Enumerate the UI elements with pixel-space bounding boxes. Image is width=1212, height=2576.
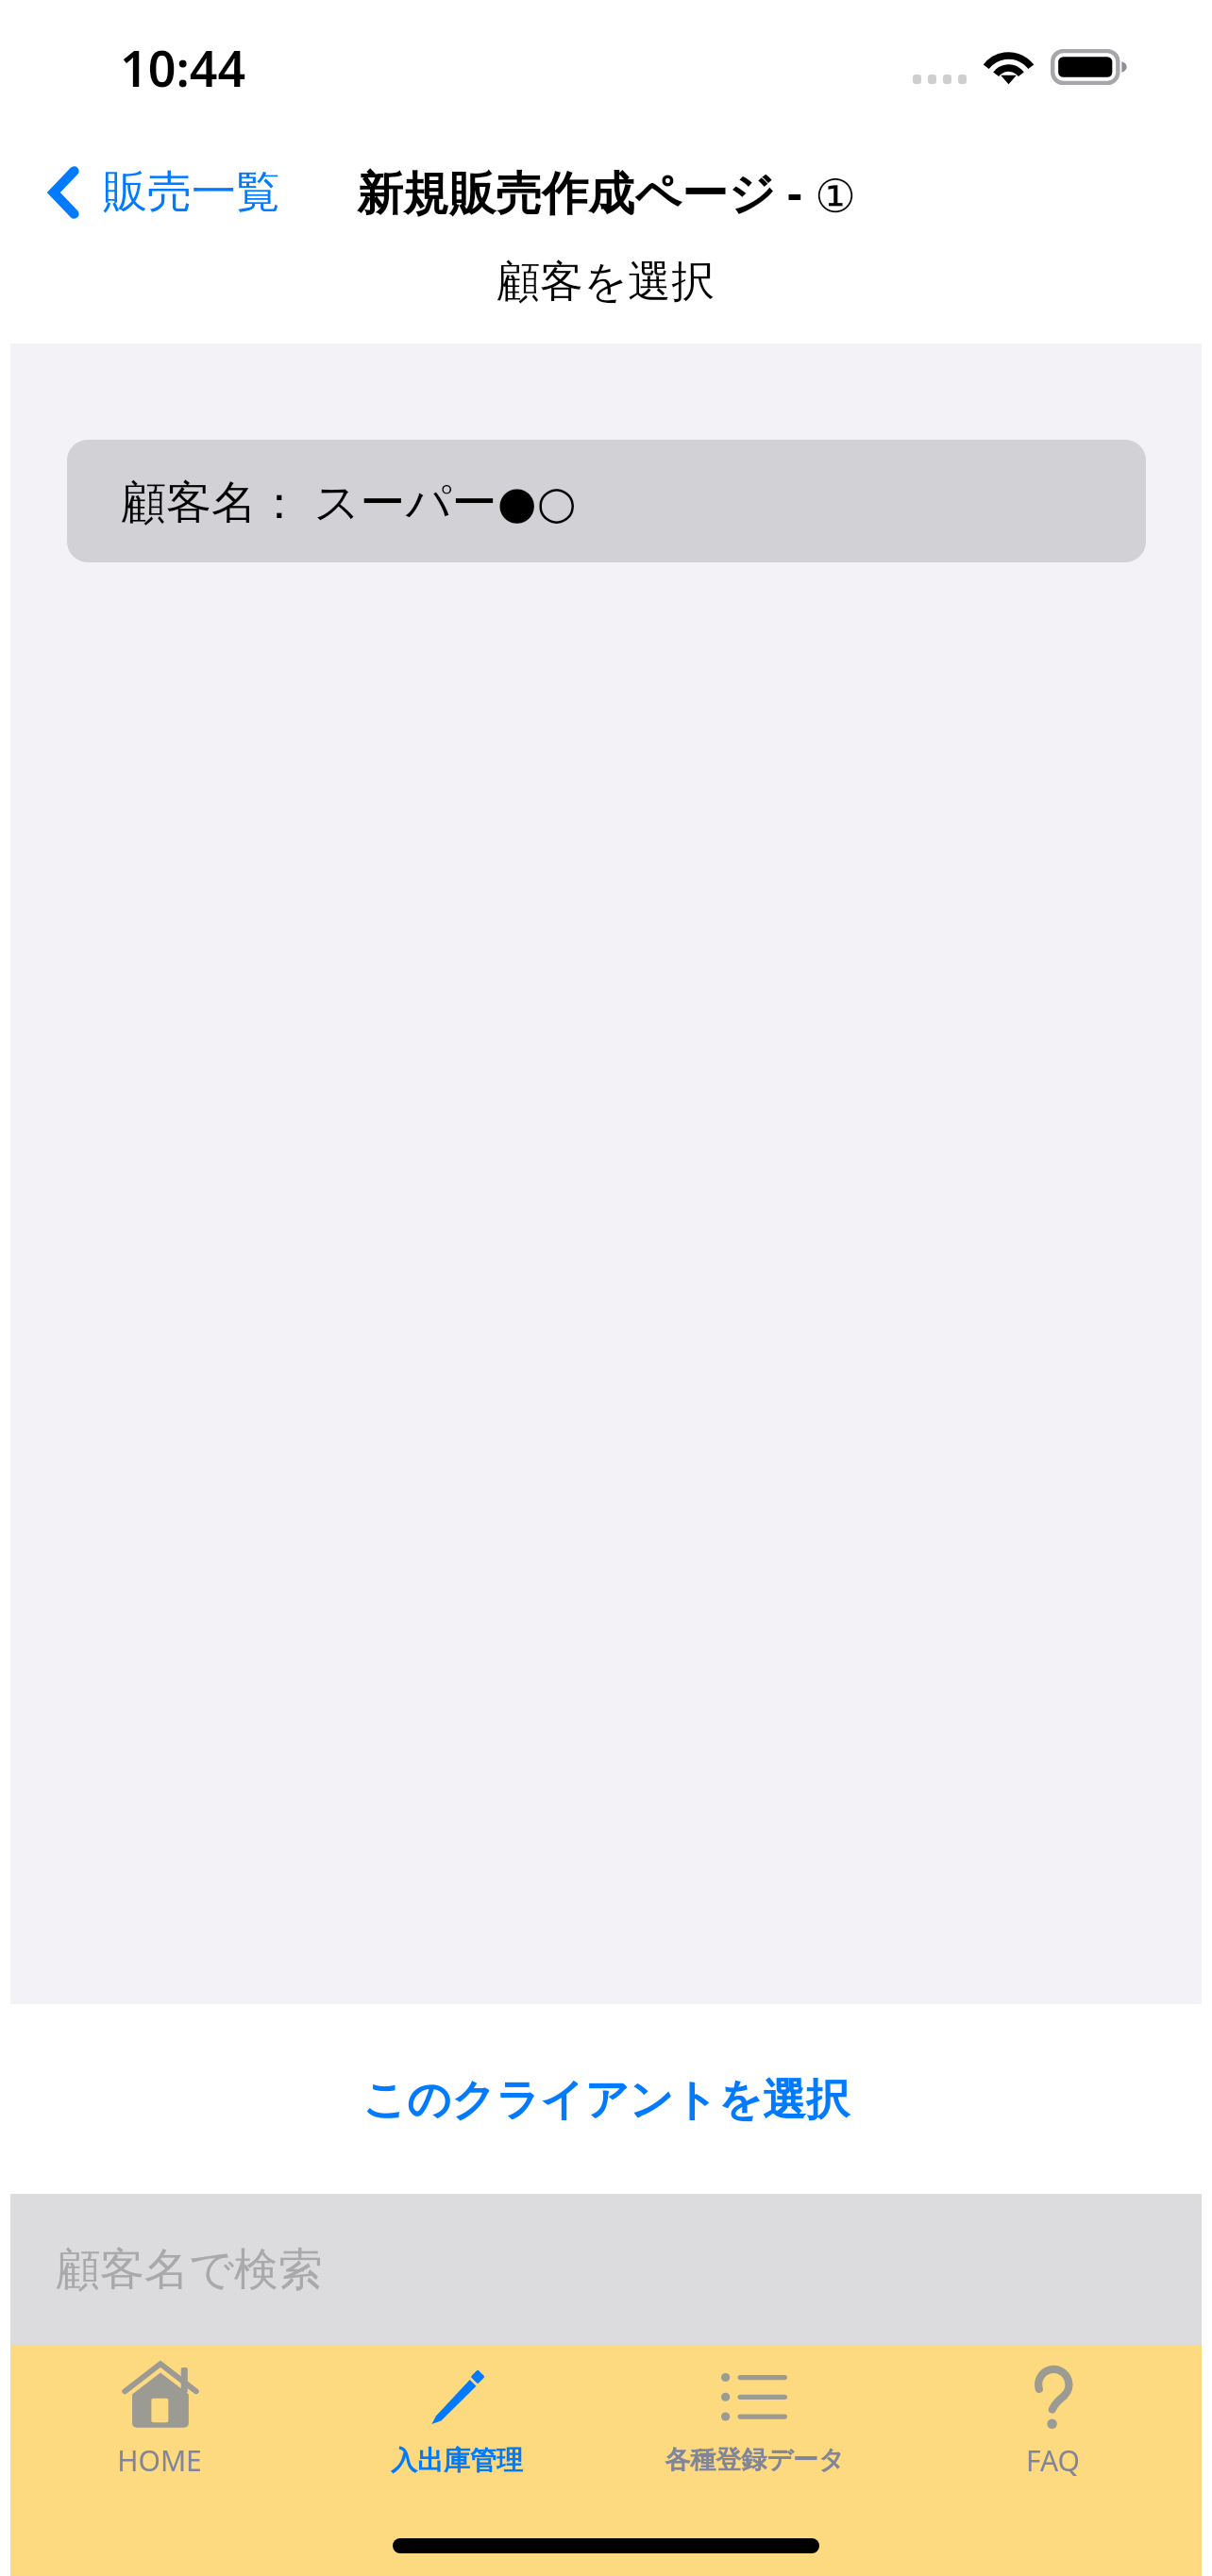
other: Home <box>122 2361 197 2428</box>
button[interactable]: Home <box>10 2345 308 2477</box>
staticText: HOME <box>117 2441 202 2477</box>
staticText: 顧客名で検索 <box>56 2242 324 2298</box>
other: Wi-Fi <box>985 48 1032 83</box>
other: Inventory management <box>430 2371 483 2424</box>
button[interactable]: Inventory management <box>308 2345 605 2477</box>
button[interactable]: このクライアントを選択 <box>0 2004 1212 2194</box>
staticText: 10:44 <box>120 34 246 101</box>
staticText: 入出庫管理 <box>391 2444 523 2477</box>
other: Battery <box>1051 49 1130 85</box>
button[interactable]: Back <box>40 164 280 220</box>
staticText: 各種登録データ <box>665 2444 845 2476</box>
staticText: ① <box>815 170 856 224</box>
button[interactable]: 顧客名で検索 <box>10 2194 1202 2345</box>
button[interactable]: Registered data <box>605 2345 903 2477</box>
staticText: このクライアントを選択 <box>362 2073 850 2128</box>
button[interactable]: FAQ <box>903 2345 1202 2477</box>
other: Signal <box>913 75 967 84</box>
other: FAQ <box>1033 2369 1072 2432</box>
staticText: 顧客を選択 <box>497 255 715 309</box>
staticText: 顧客名： スーパー●○ <box>121 470 577 532</box>
other: Registered data <box>721 2373 787 2420</box>
staticText: FAQ <box>1026 2441 1080 2477</box>
staticText: 新規販売作成ページ - <box>357 160 815 224</box>
staticText: 販売一覧 <box>103 164 280 220</box>
other: Back <box>47 167 79 218</box>
button[interactable]: 顧客名： スーパー●○ <box>67 440 1146 562</box>
